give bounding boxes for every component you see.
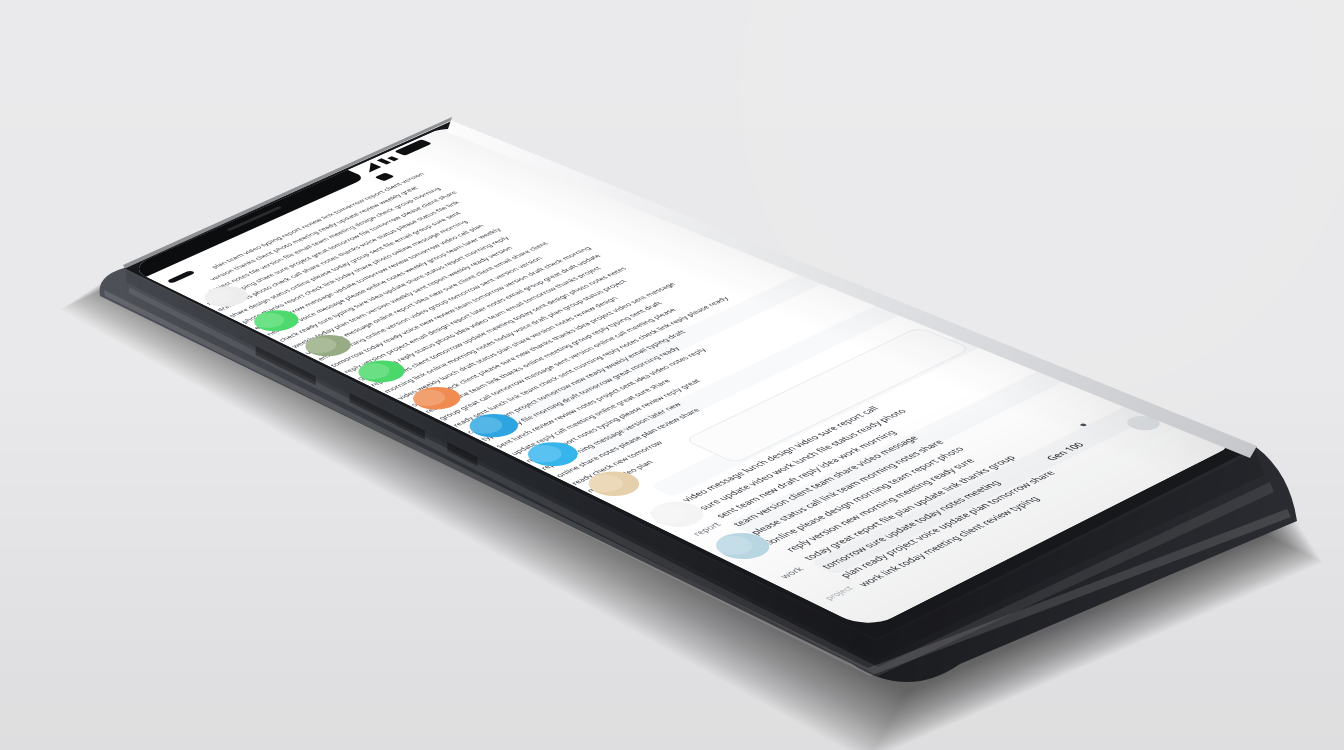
button[interactable]: Smartphone product shot showing a messag… (0, 0, 1344, 750)
